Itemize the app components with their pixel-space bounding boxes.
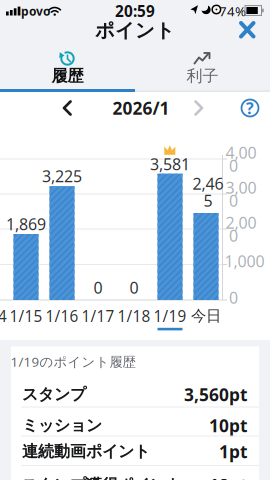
staticText: 10pt <box>209 414 248 437</box>
staticText: 0 <box>229 155 238 176</box>
staticText: 4 <box>0 306 7 326</box>
button[interactable]: 前の月 <box>0 0 270 480</box>
staticText: 5 <box>203 190 212 211</box>
staticText: 10pt <box>209 473 248 480</box>
staticText: 3,225 <box>42 165 82 187</box>
staticText: 2026/1 <box>112 96 169 120</box>
button[interactable]: 1/17 <box>0 0 270 480</box>
staticText: 0 <box>129 277 138 298</box>
staticText: 1/15 <box>9 306 42 326</box>
button[interactable]: 履歴 <box>0 0 270 480</box>
button[interactable]: 利子 <box>0 0 270 480</box>
staticText: 1/19 <box>153 306 186 326</box>
staticText: 1/19のポイント履歴 <box>10 352 135 371</box>
button[interactable]: 1/16 <box>0 0 270 480</box>
staticText: 20:59 <box>115 1 155 21</box>
staticText: ? <box>246 97 254 119</box>
staticText: 1/16 <box>45 306 78 326</box>
staticText: 3,560pt <box>184 383 248 406</box>
staticText: 0 <box>229 190 238 211</box>
staticText: スタンプ獲得ポイント <box>22 475 182 480</box>
staticText: 3,00 <box>225 177 256 198</box>
staticText: 2,00 <box>225 212 256 233</box>
staticText: スタンプ <box>22 384 86 405</box>
staticText: 今日 <box>191 306 221 326</box>
staticText: 利子 <box>186 66 218 86</box>
staticText: 3,581 <box>150 153 190 175</box>
staticText: 連続動画ポイント <box>22 441 150 462</box>
button[interactable]: 閉じる <box>0 0 270 480</box>
button[interactable]: 1/19 <box>0 0 270 480</box>
staticText: ポイント <box>95 18 175 43</box>
staticText: 1/18 <box>117 306 150 326</box>
staticText: 74% <box>219 2 246 20</box>
staticText: 0 <box>93 277 102 298</box>
staticText: 1,869 <box>6 213 46 235</box>
staticText: 0 <box>229 225 238 246</box>
staticText: 履歴 <box>51 66 83 86</box>
button[interactable]: ヘルプ <box>0 0 270 480</box>
staticText: 4,00 <box>225 142 256 163</box>
button[interactable]: 1/15 <box>0 0 270 480</box>
staticText: povo <box>21 3 51 19</box>
button[interactable]: 今日 <box>0 0 270 480</box>
staticText: 1pt <box>219 440 248 463</box>
staticText: 0 <box>229 287 238 308</box>
button[interactable]: 1/18 <box>0 0 270 480</box>
staticText: 1/17 <box>81 306 114 326</box>
staticText: 1,000 <box>224 250 264 272</box>
button[interactable]: 次の月 <box>0 0 270 480</box>
staticText: 2,46 <box>192 173 223 194</box>
staticText: ミッション <box>22 415 102 436</box>
